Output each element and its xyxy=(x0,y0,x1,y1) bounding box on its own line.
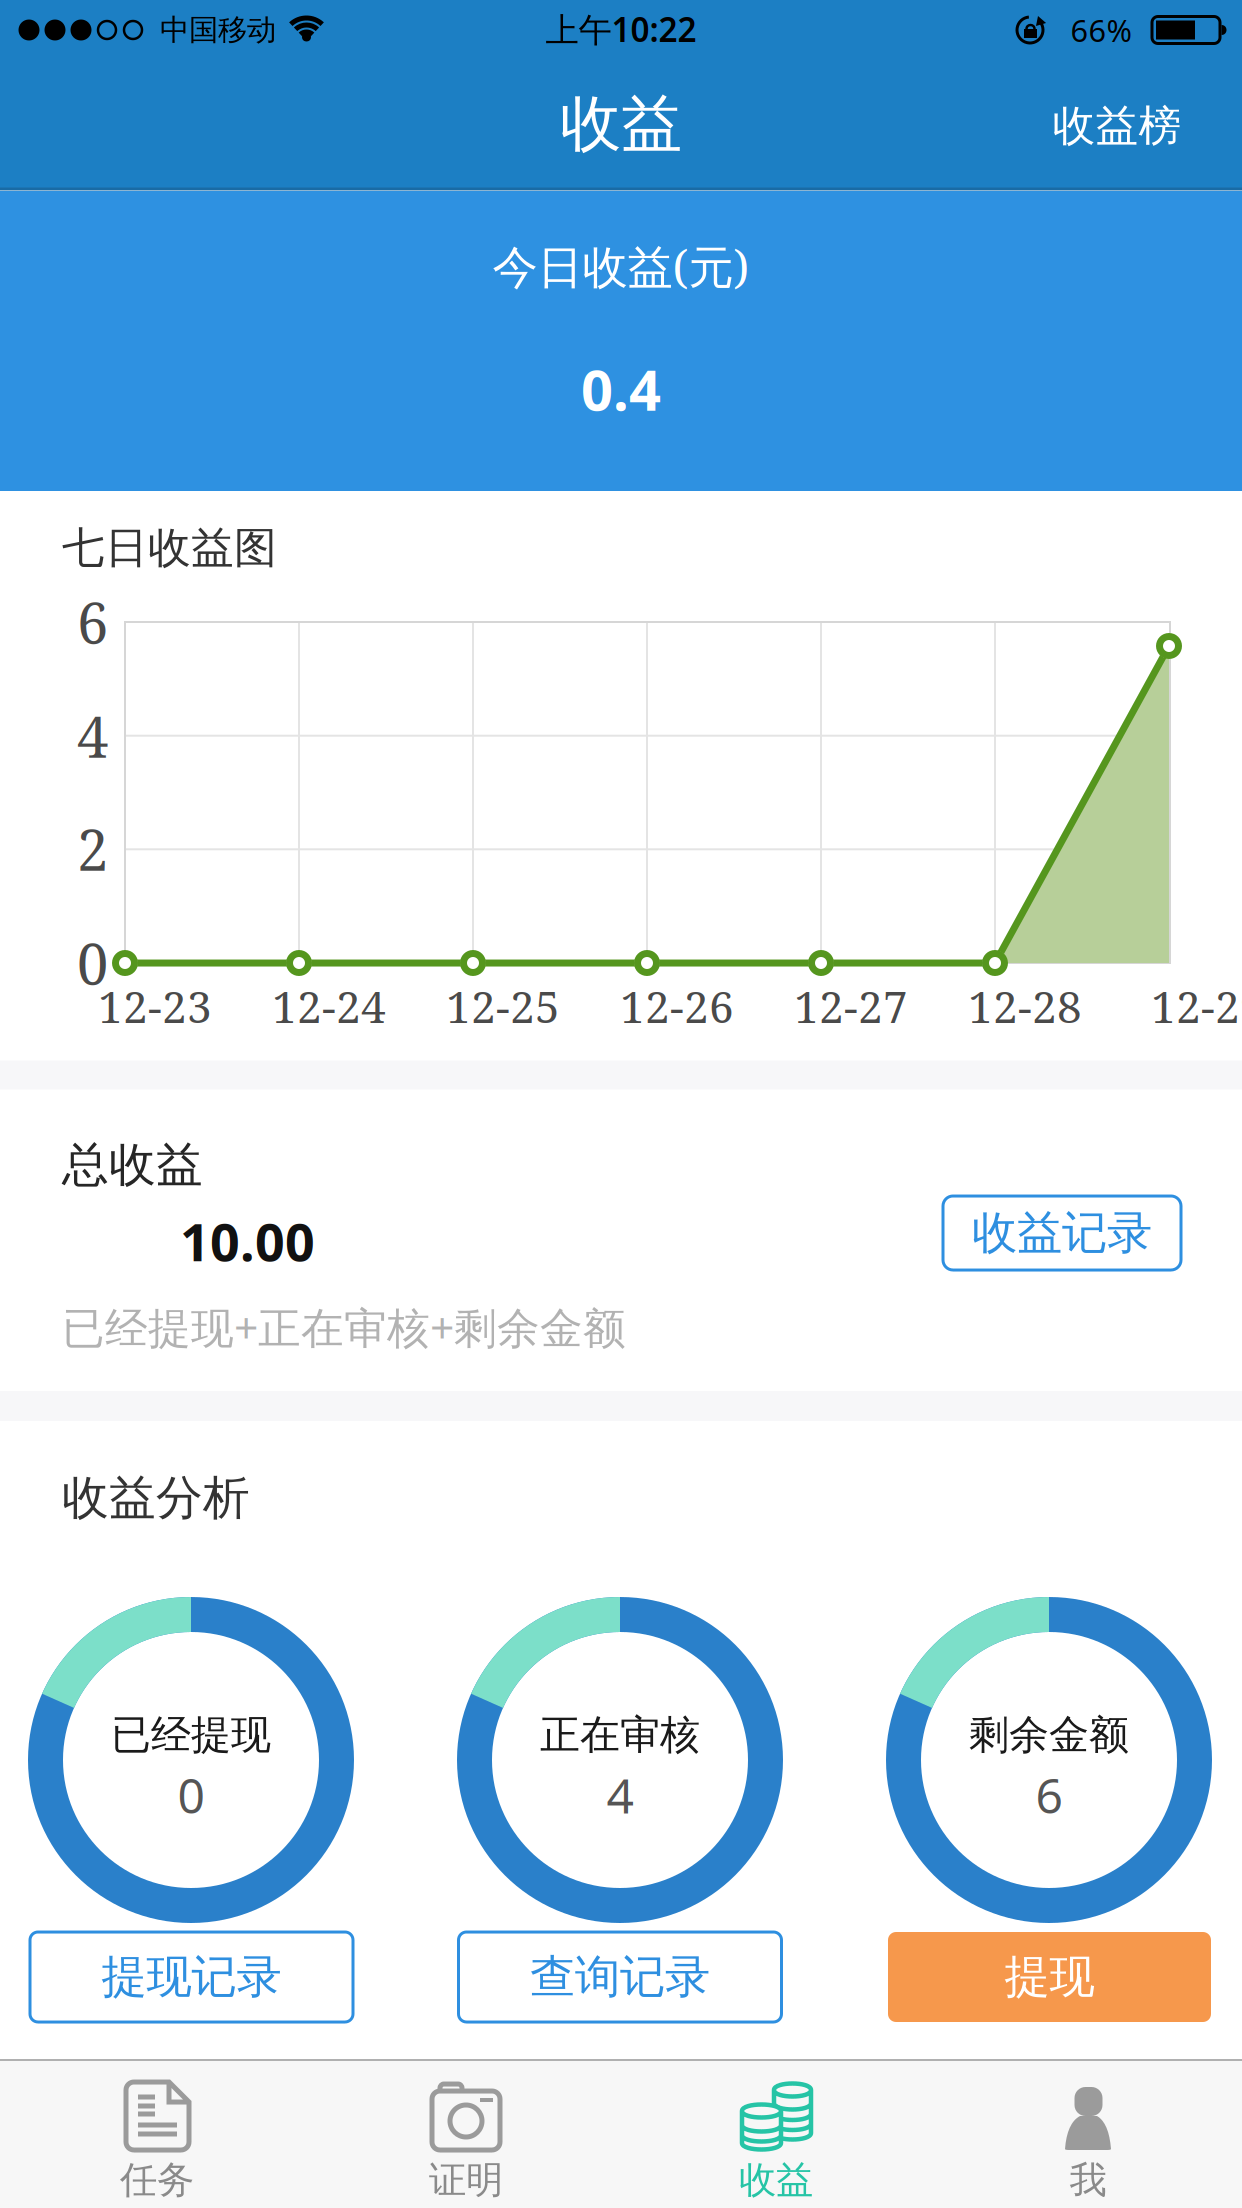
staticText: 0.4 xyxy=(581,351,661,427)
button[interactable]: 任务 xyxy=(0,0,1242,2208)
staticText: 10.00 xyxy=(180,1206,315,1276)
staticText: 收益记录 xyxy=(972,1204,1152,1261)
staticText: 收益 xyxy=(739,2157,813,2203)
staticText: 4 xyxy=(77,698,108,774)
staticText: 查询记录 xyxy=(530,1948,710,2005)
staticText: 已经提现 xyxy=(111,1710,271,1760)
button[interactable]: 证明 xyxy=(0,0,1242,2208)
staticText: 提现记录 xyxy=(101,1948,281,2005)
button[interactable]: 收益记录 xyxy=(943,1196,1181,1270)
staticText: 中国移动 xyxy=(160,12,276,48)
staticText: 总收益 xyxy=(62,1136,203,1194)
staticText: 收益 xyxy=(560,85,682,163)
staticText: 上午10:22 xyxy=(545,6,696,52)
button[interactable]: 收益 xyxy=(0,0,1242,2208)
button[interactable]: 查询记录 xyxy=(458,1932,781,2022)
staticText: 0 xyxy=(177,1763,204,1827)
staticText: 4 xyxy=(606,1763,633,1827)
staticText: 12-23 xyxy=(98,976,212,1036)
staticText: 剩余金额 xyxy=(969,1710,1129,1760)
staticText: 12-26 xyxy=(620,976,734,1036)
staticText: 已经提现+正在审核+剩余金额 xyxy=(62,1299,626,1355)
staticText: 正在审核 xyxy=(540,1710,700,1760)
staticText: 证明 xyxy=(429,2157,503,2203)
staticText: 0 xyxy=(77,925,108,1001)
staticText: 12-24 xyxy=(272,976,386,1036)
staticText: 12-28 xyxy=(968,976,1082,1036)
staticText: 6 xyxy=(1035,1763,1062,1827)
button[interactable]: 提现 xyxy=(888,1932,1211,2022)
staticText: 6 xyxy=(77,584,108,660)
staticText: 我 xyxy=(1069,2157,1106,2203)
button[interactable]: 我 xyxy=(0,0,1242,2208)
staticText: 12-27 xyxy=(794,976,908,1036)
staticText: 收益分析 xyxy=(62,1469,250,1527)
button[interactable]: 收益榜 xyxy=(1022,76,1212,176)
staticText: 66% xyxy=(1070,10,1131,50)
staticText: 2 xyxy=(77,811,108,887)
staticText: 提现 xyxy=(1004,1948,1094,2005)
staticText: 12-29 xyxy=(1151,976,1242,1036)
staticText: 今日收益(元) xyxy=(492,235,749,297)
staticText: 七日收益图 xyxy=(62,522,277,574)
staticText: 12-25 xyxy=(446,976,560,1036)
button[interactable]: 提现记录 xyxy=(30,1932,353,2022)
staticText: 任务 xyxy=(120,2157,194,2203)
staticText: 收益榜 xyxy=(1052,100,1181,152)
